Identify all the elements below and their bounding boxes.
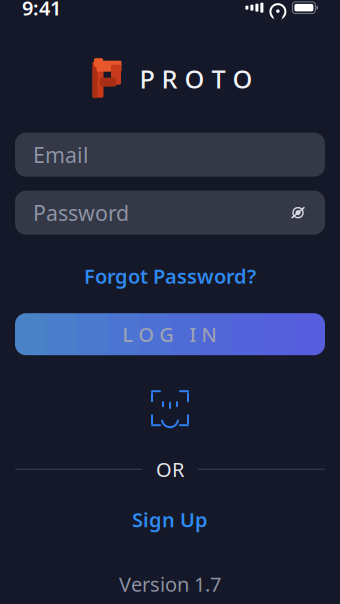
staticText: 9:41 [22, 0, 61, 21]
staticText: Password [33, 198, 129, 227]
button[interactable]: Sign Up [120, 502, 220, 537]
button[interactable]: Password [15, 191, 325, 235]
staticText: Email [33, 140, 89, 169]
staticText: P R O T O [139, 62, 252, 95]
button[interactable]: Sign in with Face ID [144, 382, 196, 434]
staticText: L O G I N [122, 321, 217, 347]
button[interactable]: Forgot Password? [74, 259, 266, 293]
staticText: OR [156, 456, 184, 482]
staticText: Sign Up [132, 506, 208, 533]
staticText: Forgot Password? [84, 263, 256, 289]
button[interactable]: Email [15, 133, 325, 177]
button[interactable]: L O G I N [15, 313, 325, 355]
staticText: Version 1.7 [119, 571, 221, 597]
